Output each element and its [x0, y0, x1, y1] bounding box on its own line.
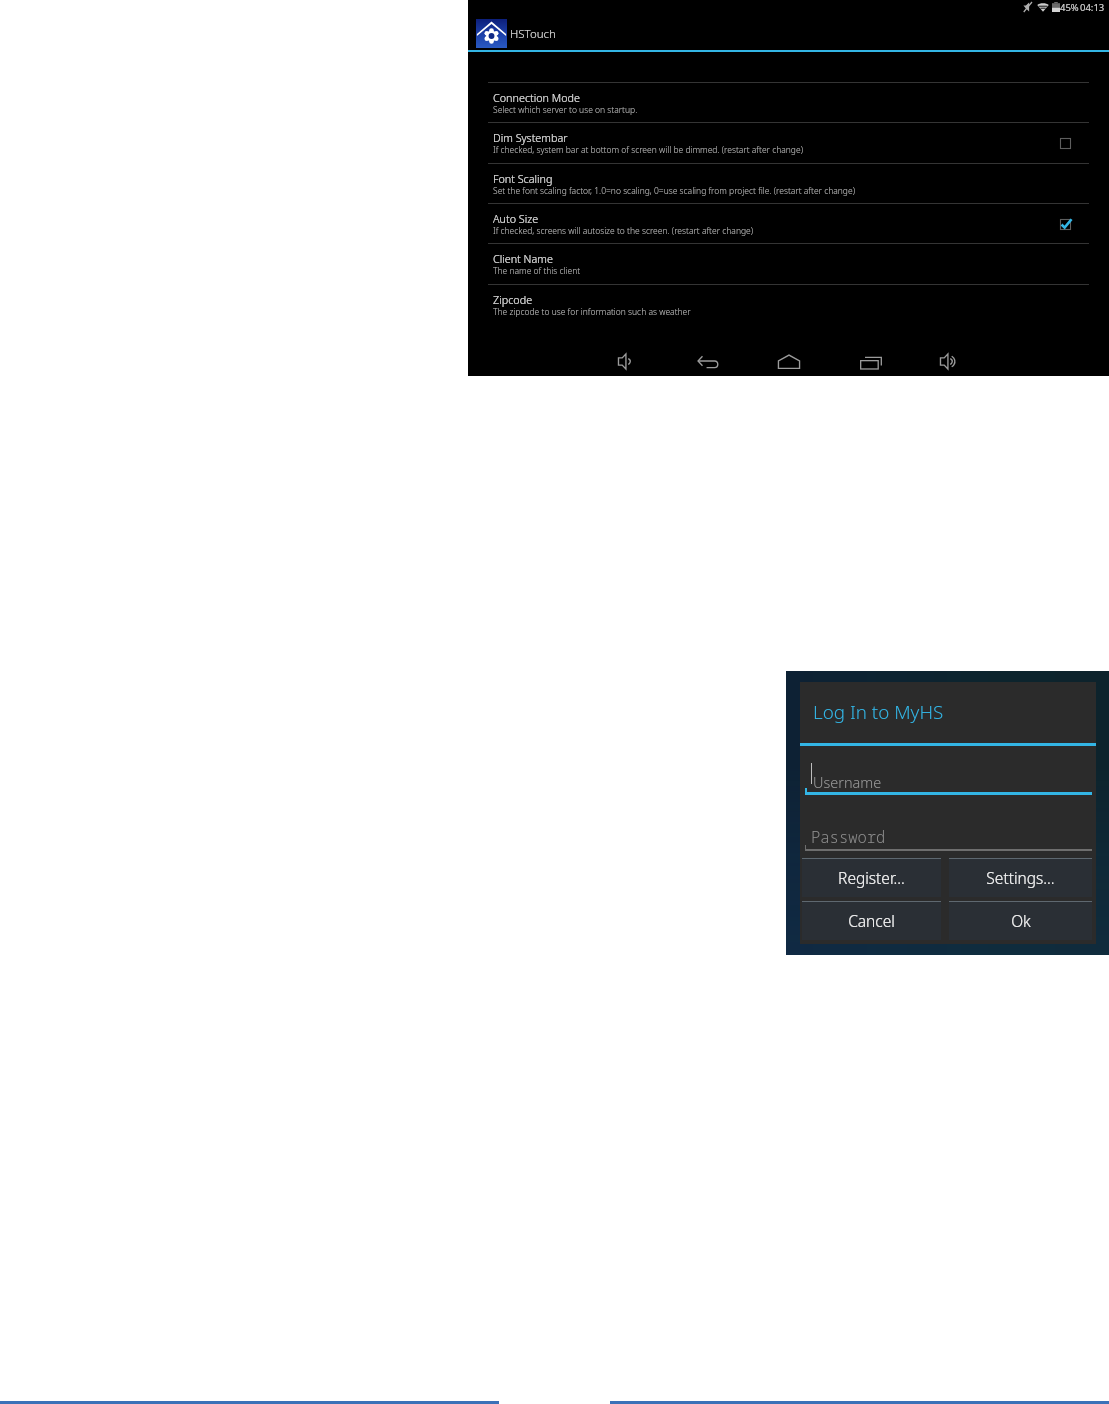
staticText: Register... [838, 867, 905, 888]
button[interactable]: Zipcode [488, 285, 1089, 324]
button[interactable]: Volume down [603, 346, 651, 376]
button[interactable]: Ok [949, 901, 1092, 940]
staticText: Dim Systembar [493, 130, 568, 145]
staticText: Password [811, 826, 886, 847]
button[interactable]: Font Scaling [488, 164, 1089, 203]
button[interactable]: Settings... [949, 858, 1092, 897]
button[interactable]: Auto Size checkbox [1050, 212, 1081, 237]
button[interactable]: Register... [802, 858, 941, 897]
staticText: The name of this client [493, 265, 581, 277]
staticText: Zipcode [493, 292, 533, 307]
staticText: Username [813, 772, 882, 792]
button[interactable]: Username [805, 758, 1092, 796]
button[interactable]: Cancel [802, 901, 941, 940]
staticText: Log In to MyHS [813, 699, 944, 725]
staticText: If checked, system bar at bottom of scre… [493, 144, 803, 156]
staticText: 45% [1060, 1, 1079, 14]
staticText: Client Name [493, 251, 553, 266]
button[interactable]: Auto Size [488, 204, 1089, 243]
staticText: Settings... [986, 867, 1055, 888]
staticText: HSTouch [510, 26, 556, 42]
button[interactable]: Client Name [488, 244, 1089, 283]
button[interactable]: Home [765, 346, 813, 376]
button[interactable]: Volume up [925, 346, 973, 376]
button[interactable]: Connection Mode [488, 83, 1089, 122]
staticText: Select which server to use on startup. [493, 104, 638, 116]
staticText: Ok [1011, 910, 1031, 931]
staticText: Connection Mode [493, 90, 581, 105]
button[interactable]: Dim Systembar checkbox [1050, 131, 1081, 156]
staticText: The zipcode to use for information such … [493, 306, 691, 318]
staticText: Cancel [848, 910, 895, 931]
staticText: If checked, screens will autosize to the… [493, 225, 754, 237]
staticText: Font Scaling [493, 171, 553, 186]
staticText: Auto Size [493, 211, 539, 226]
button[interactable]: Recent apps [847, 346, 895, 376]
staticText: 04:13 [1080, 1, 1105, 14]
button[interactable]: Dim Systembar [488, 123, 1089, 162]
button[interactable]: Password [805, 812, 1092, 849]
staticText: Set the font scaling factor, 1.0=no scal… [493, 185, 855, 197]
button[interactable]: Back [684, 346, 732, 376]
